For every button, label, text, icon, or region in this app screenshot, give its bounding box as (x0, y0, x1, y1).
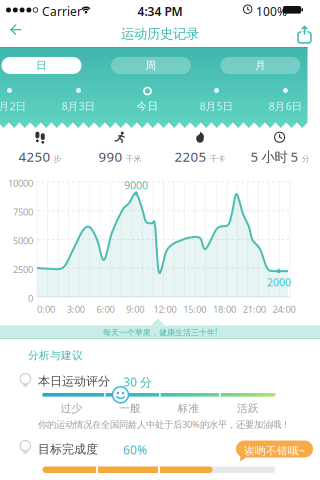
button[interactable]: 评分滑块 (112, 387, 128, 403)
staticText: 你的运动情况在全国同龄人中处于后30%的水平，还要加油哦！ (38, 418, 290, 430)
staticText: 2000 (267, 275, 291, 289)
button[interactable]: 8月3日 (44, 87, 113, 113)
staticText: 9000 (124, 178, 148, 192)
staticText: 990 (98, 148, 122, 165)
staticText: 6:00 (96, 303, 114, 315)
button[interactable]: 诶哟不错哦~ (236, 440, 313, 462)
button[interactable]: 日 (1, 57, 81, 74)
staticText: 3:00 (67, 303, 85, 315)
staticText: 分析与建议 (28, 349, 83, 362)
staticText: 8月6日 (268, 99, 302, 113)
staticText: 4:34 PM (137, 3, 182, 19)
staticText: 0 (28, 292, 33, 304)
staticText: 步 (53, 154, 61, 164)
staticText: 4250 (18, 148, 50, 165)
staticText: 21:00 (243, 303, 266, 315)
button[interactable]: 8月6日 (251, 87, 320, 113)
staticText: 2500 (13, 263, 33, 276)
staticText: 今日 (136, 99, 158, 113)
staticText: 本日运动评分 (38, 374, 110, 389)
staticText: Carrier (42, 3, 82, 19)
button[interactable]: Back (2, 16, 30, 44)
staticText: 运动历史记录 (121, 25, 199, 42)
staticText: 60% (123, 442, 147, 458)
staticText: 30 分 (123, 374, 152, 390)
staticText: 日 (36, 59, 47, 72)
staticText: 千米 (125, 154, 141, 164)
staticText: 5000 (13, 234, 33, 247)
button[interactable]: Share (291, 20, 318, 49)
staticText: 12:00 (153, 303, 176, 315)
staticText: 18:00 (213, 303, 236, 315)
button[interactable]: 今日 (113, 87, 182, 113)
button[interactable]: 8月5日 (182, 87, 251, 113)
staticText: 一般 (119, 402, 141, 415)
staticText: 8月2日 (0, 99, 26, 113)
staticText: 10000 (8, 177, 33, 189)
staticText: 月 (255, 59, 266, 72)
staticText: 8月3日 (61, 99, 95, 113)
staticText: 每天一个苹果，健康生活三十年! (103, 327, 217, 337)
staticText: 周 (145, 59, 156, 72)
staticText: 100% (256, 3, 287, 19)
staticText: 分 (301, 154, 309, 164)
button[interactable]: 8月2日 (0, 87, 44, 113)
staticText: 活跃 (237, 402, 259, 415)
staticText: 过少 (60, 402, 82, 415)
staticText: 8月5日 (199, 99, 233, 113)
staticText: 标准 (177, 402, 199, 415)
button[interactable]: 周 (111, 57, 191, 74)
staticText: 5 小时 5 (250, 148, 298, 165)
staticText: 诶哟不错哦~ (244, 443, 305, 458)
staticText: 2205 (174, 148, 206, 165)
staticText: 千卡 (209, 154, 225, 164)
staticText: 7500 (13, 206, 33, 218)
staticText: 9:00 (126, 303, 144, 315)
staticText: 24:00 (272, 303, 295, 315)
staticText: 目标完成度 (38, 442, 98, 457)
button[interactable]: 月 (220, 57, 300, 74)
staticText: 0:00 (37, 303, 55, 315)
staticText: 15:00 (183, 303, 206, 315)
